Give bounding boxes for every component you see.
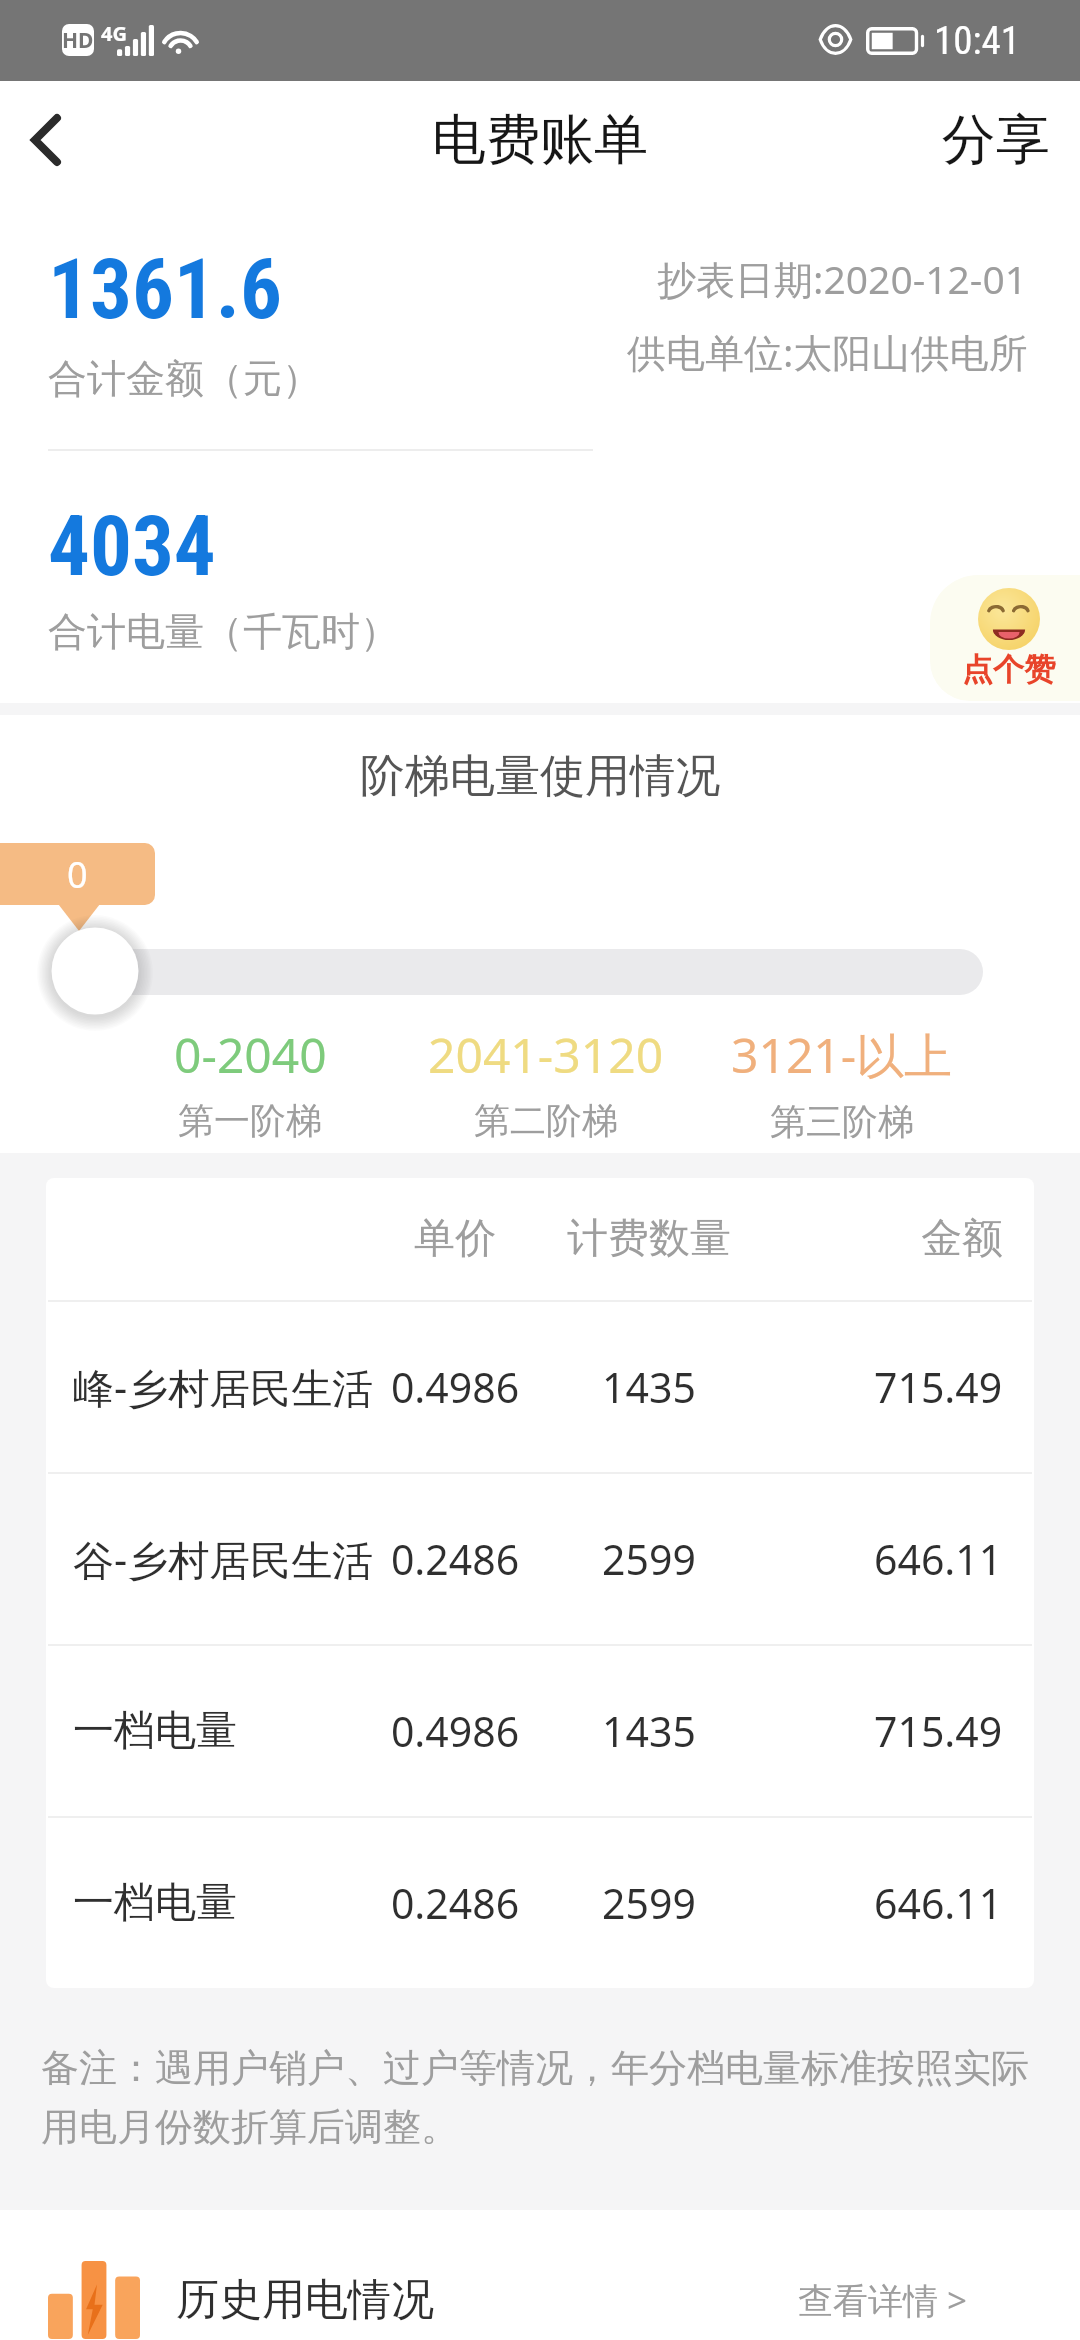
- staticText: 阶梯电量使用情况: [0, 748, 1080, 805]
- button[interactable]: 峰-乡村居民生活: [46, 1302, 1034, 1472]
- staticText: 谷-乡村居民生活: [73, 1531, 374, 1587]
- button[interactable]: 3121-以上: [694, 1022, 990, 1144]
- staticText: 合计电量（千瓦时）: [48, 607, 399, 656]
- staticText: 0: [67, 850, 88, 899]
- button[interactable]: 一档电量: [46, 1646, 1034, 1816]
- staticText: 10:41: [934, 18, 1021, 64]
- staticText: 单价: [345, 1213, 565, 1265]
- button[interactable]: 谷-乡村居民生活: [46, 1474, 1034, 1644]
- staticText: 715.49: [874, 1359, 1003, 1415]
- staticText: 一档电量: [73, 1705, 237, 1757]
- staticText: 1435: [543, 1359, 755, 1415]
- staticText: 点个赞: [962, 650, 1055, 689]
- staticText: 0.4986: [345, 1703, 565, 1759]
- staticText: 0.2486: [345, 1875, 565, 1931]
- staticText: 电费账单: [432, 106, 648, 174]
- staticText: 峰-乡村居民生活: [73, 1359, 374, 1415]
- staticText: 查看详情 >: [798, 2276, 968, 2324]
- staticText: HD: [62, 26, 94, 55]
- staticText: 计费数量: [543, 1213, 755, 1265]
- button[interactable]: 一档电量: [46, 1818, 1034, 1988]
- staticText: 0-2040: [174, 1022, 327, 1087]
- staticText: 715.49: [874, 1703, 1003, 1759]
- staticText: 4034: [48, 498, 216, 595]
- button[interactable]: 0-2040: [102, 1022, 398, 1143]
- staticText: 1435: [543, 1703, 755, 1759]
- staticText: 备注：遇用户销户、过户等情况，年分档电量标准按照实际用电月份数折算后调整。: [41, 2044, 1041, 2151]
- staticText: 金额: [921, 1213, 1003, 1265]
- staticText: 646.11: [874, 1531, 1003, 1587]
- staticText: 2599: [543, 1875, 755, 1931]
- staticText: 供电单位:太阳山供电所: [627, 325, 1028, 378]
- staticText: 历史用电情况: [176, 2273, 434, 2327]
- button[interactable]: 分享: [902, 81, 1080, 198]
- staticText: 合计金额（元）: [48, 354, 321, 403]
- button[interactable]: Like: [930, 575, 1080, 701]
- button[interactable]: Back: [0, 81, 100, 198]
- staticText: 第三阶梯: [770, 1099, 914, 1144]
- staticText: 4G: [101, 20, 127, 47]
- staticText: 分享: [942, 106, 1050, 174]
- staticText: 2041-3120: [428, 1022, 664, 1087]
- staticText: 第一阶梯: [178, 1098, 322, 1143]
- button[interactable]: 2041-3120: [398, 1022, 694, 1143]
- staticText: 0.2486: [345, 1531, 565, 1587]
- staticText: 3121-以上: [731, 1022, 953, 1088]
- staticText: 1361.6: [48, 241, 282, 338]
- staticText: 一档电量: [73, 1877, 237, 1929]
- staticText: 646.11: [874, 1875, 1003, 1931]
- staticText: 2599: [543, 1531, 755, 1587]
- staticText: 抄表日期:2020-12-01: [657, 252, 1028, 305]
- staticText: 0.4986: [345, 1359, 565, 1415]
- staticText: 第二阶梯: [474, 1098, 618, 1143]
- button[interactable]: 历史用电情况: [0, 2210, 1080, 2340]
